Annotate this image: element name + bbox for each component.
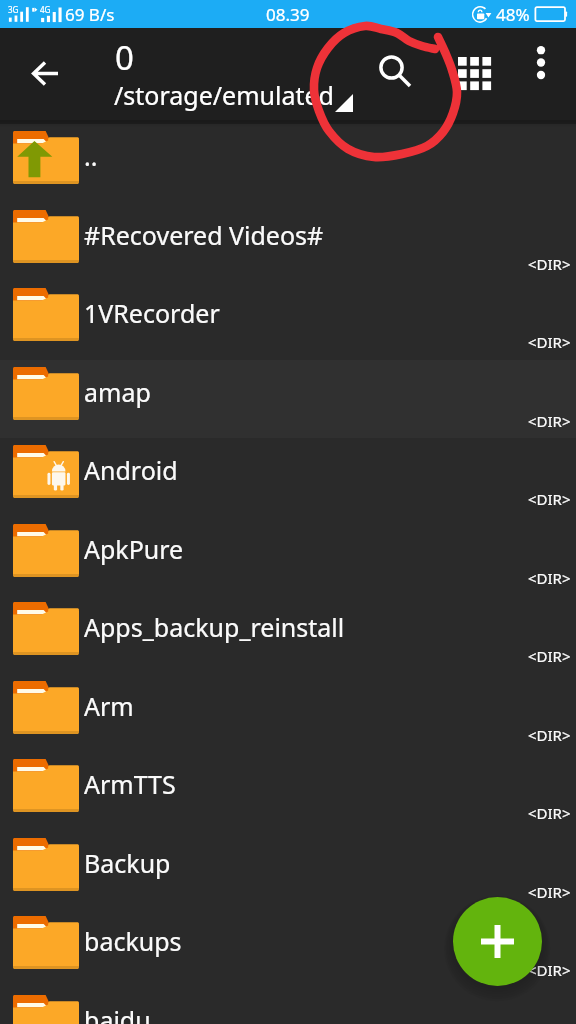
staticText: <DIR> xyxy=(528,411,571,431)
staticText: /storage/emulated xyxy=(114,78,334,112)
staticText: Backup xyxy=(84,846,171,880)
staticText: 48% xyxy=(496,3,530,26)
button[interactable]: Android xyxy=(0,438,576,517)
staticText: 1VRecorder xyxy=(84,296,220,330)
button[interactable]: backups xyxy=(0,909,576,988)
staticText: 3G xyxy=(8,4,19,15)
staticText: <DIR> xyxy=(528,725,571,745)
staticText: 0 xyxy=(115,35,134,80)
button[interactable]: Search xyxy=(367,43,422,98)
staticText: baidu xyxy=(84,1003,151,1024)
button[interactable]: Apps_backup_reinstall xyxy=(0,595,576,674)
button[interactable]: #Recovered Videos# xyxy=(0,203,576,282)
button[interactable]: Arm xyxy=(0,674,576,753)
staticText: #Recovered Videos# xyxy=(84,218,324,252)
button[interactable]: Back xyxy=(13,41,77,105)
button[interactable]: baidu xyxy=(0,988,576,1024)
staticText: ArmTTS xyxy=(84,767,176,801)
button[interactable]: Backup xyxy=(0,831,576,910)
button[interactable]: amap xyxy=(0,360,576,439)
staticText: ApkPure xyxy=(84,532,184,566)
staticText: <DIR> xyxy=(528,882,571,902)
button[interactable]: Grid view xyxy=(458,57,491,90)
staticText: <DIR> xyxy=(528,254,571,274)
staticText: Arm xyxy=(84,689,134,723)
button[interactable]: ArmTTS xyxy=(0,752,576,831)
button[interactable]: ApkPure xyxy=(0,517,576,596)
staticText: amap xyxy=(84,375,151,409)
staticText: <DIR> xyxy=(528,646,571,666)
staticText: 4G xyxy=(40,4,51,15)
staticText: .. xyxy=(84,139,98,173)
staticText: <DIR> xyxy=(528,960,571,980)
staticText: Android xyxy=(84,453,178,487)
button[interactable]: 1VRecorder xyxy=(0,281,576,360)
staticText: <DIR> xyxy=(528,489,571,509)
staticText: <DIR> xyxy=(528,803,571,823)
staticText: 08.39 xyxy=(266,3,310,26)
staticText: Apps_backup_reinstall xyxy=(84,610,345,644)
staticText: backups xyxy=(84,924,182,958)
button[interactable]: Add xyxy=(453,897,542,986)
button[interactable]: More options xyxy=(518,39,564,85)
button[interactable]: .. xyxy=(0,124,576,203)
staticText: 69 B/s xyxy=(65,3,115,26)
staticText: <DIR> xyxy=(528,568,571,588)
staticText: <DIR> xyxy=(528,332,571,352)
